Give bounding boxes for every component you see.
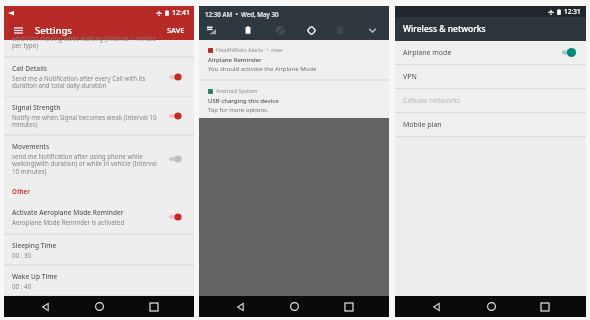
button[interactable]: Expand quick settings [365,23,379,37]
staticText: Tap for more options. [208,106,269,114]
staticText: 12:41 [172,8,190,18]
button[interactable]: Toggle [169,111,182,121]
button[interactable]: Mobile data [204,23,218,37]
button[interactable]: Recent apps [335,296,363,317]
staticText: USB charging this device [208,97,279,105]
staticText: HealthRisks Alerts • now [216,46,283,54]
staticText: 00 : 40 [12,282,32,290]
staticText: Airplane mode [403,48,452,58]
button[interactable]: SAVE [164,21,188,39]
button[interactable]: Auto rotate [304,23,318,37]
staticText: Call Details [12,64,47,73]
staticText: Airplane Reminder [208,56,262,64]
staticText: Cellular networks [403,96,461,106]
button[interactable]: Open navigation menu [10,22,26,38]
staticText: Movements [12,142,50,151]
button[interactable]: Toggle [169,154,182,164]
button[interactable]: Home [477,296,505,317]
button[interactable]: HealthRisks Alerts • now [199,40,389,79]
button[interactable]: Android System [199,81,389,118]
button[interactable]: Airplane mode [395,41,586,64]
button[interactable]: Home [280,296,308,317]
button[interactable]: Signal Strength [4,97,194,134]
button[interactable]: Call Details [4,58,194,96]
staticText: SAVE [167,25,185,35]
staticText: Notify me when Signal becomes weak (Inte… [12,113,157,129]
button[interactable]: Do not disturb [273,23,287,37]
button[interactable]: Activate Aeroplane Mode Reminder [4,201,194,233]
button[interactable]: Sleeping Time [4,235,194,264]
staticText: when I'm moving while walking (interval … [12,34,157,50]
button[interactable]: Toggle [169,72,182,82]
button[interactable]: Back [422,296,450,317]
staticText: send me Notification after using phone w… [12,152,157,176]
button[interactable]: Recent apps [531,296,559,317]
staticText: Aeroplane Mode Reminder is activated [12,218,125,226]
button[interactable]: VPN [395,65,586,88]
button[interactable]: Recent apps [140,296,168,317]
button[interactable]: Battery saver [241,23,255,37]
staticText: 12:31 [564,7,581,16]
staticText: Wake Up Time [12,272,58,281]
staticText: Sleeping Time [12,241,57,250]
button[interactable]: Cellular networks [395,89,586,112]
staticText: Activate Aeroplane Mode Reminder [12,208,124,217]
staticText: Wireless & networks [403,23,486,35]
staticText: Send me a Notification after every Call … [12,74,146,90]
staticText: Android System [216,87,258,95]
button[interactable]: when I'm moving while walking (interval … [4,40,194,56]
button[interactable]: Home [85,296,113,317]
button[interactable]: Flashlight [333,23,347,37]
staticText: Settings [35,24,72,37]
button[interactable]: Movements [4,136,194,181]
staticText: You should activate the Airplane Mode [208,65,317,73]
staticText: VPN [403,72,417,82]
button[interactable]: Back [31,296,59,317]
button[interactable]: Mobile plan [395,113,586,136]
staticText: Mobile plan [403,120,442,130]
button[interactable]: Back [226,296,254,317]
staticText: 12:30 AM • Wed, May 30 [205,10,279,18]
button[interactable]: Airplane mode toggle [562,47,577,58]
staticText: Other [12,187,31,195]
staticText: 00 : 30 [12,251,32,259]
staticText: Signal Strength [12,103,61,112]
button[interactable]: Toggle [169,212,182,222]
button[interactable]: Wake Up Time [4,266,194,295]
